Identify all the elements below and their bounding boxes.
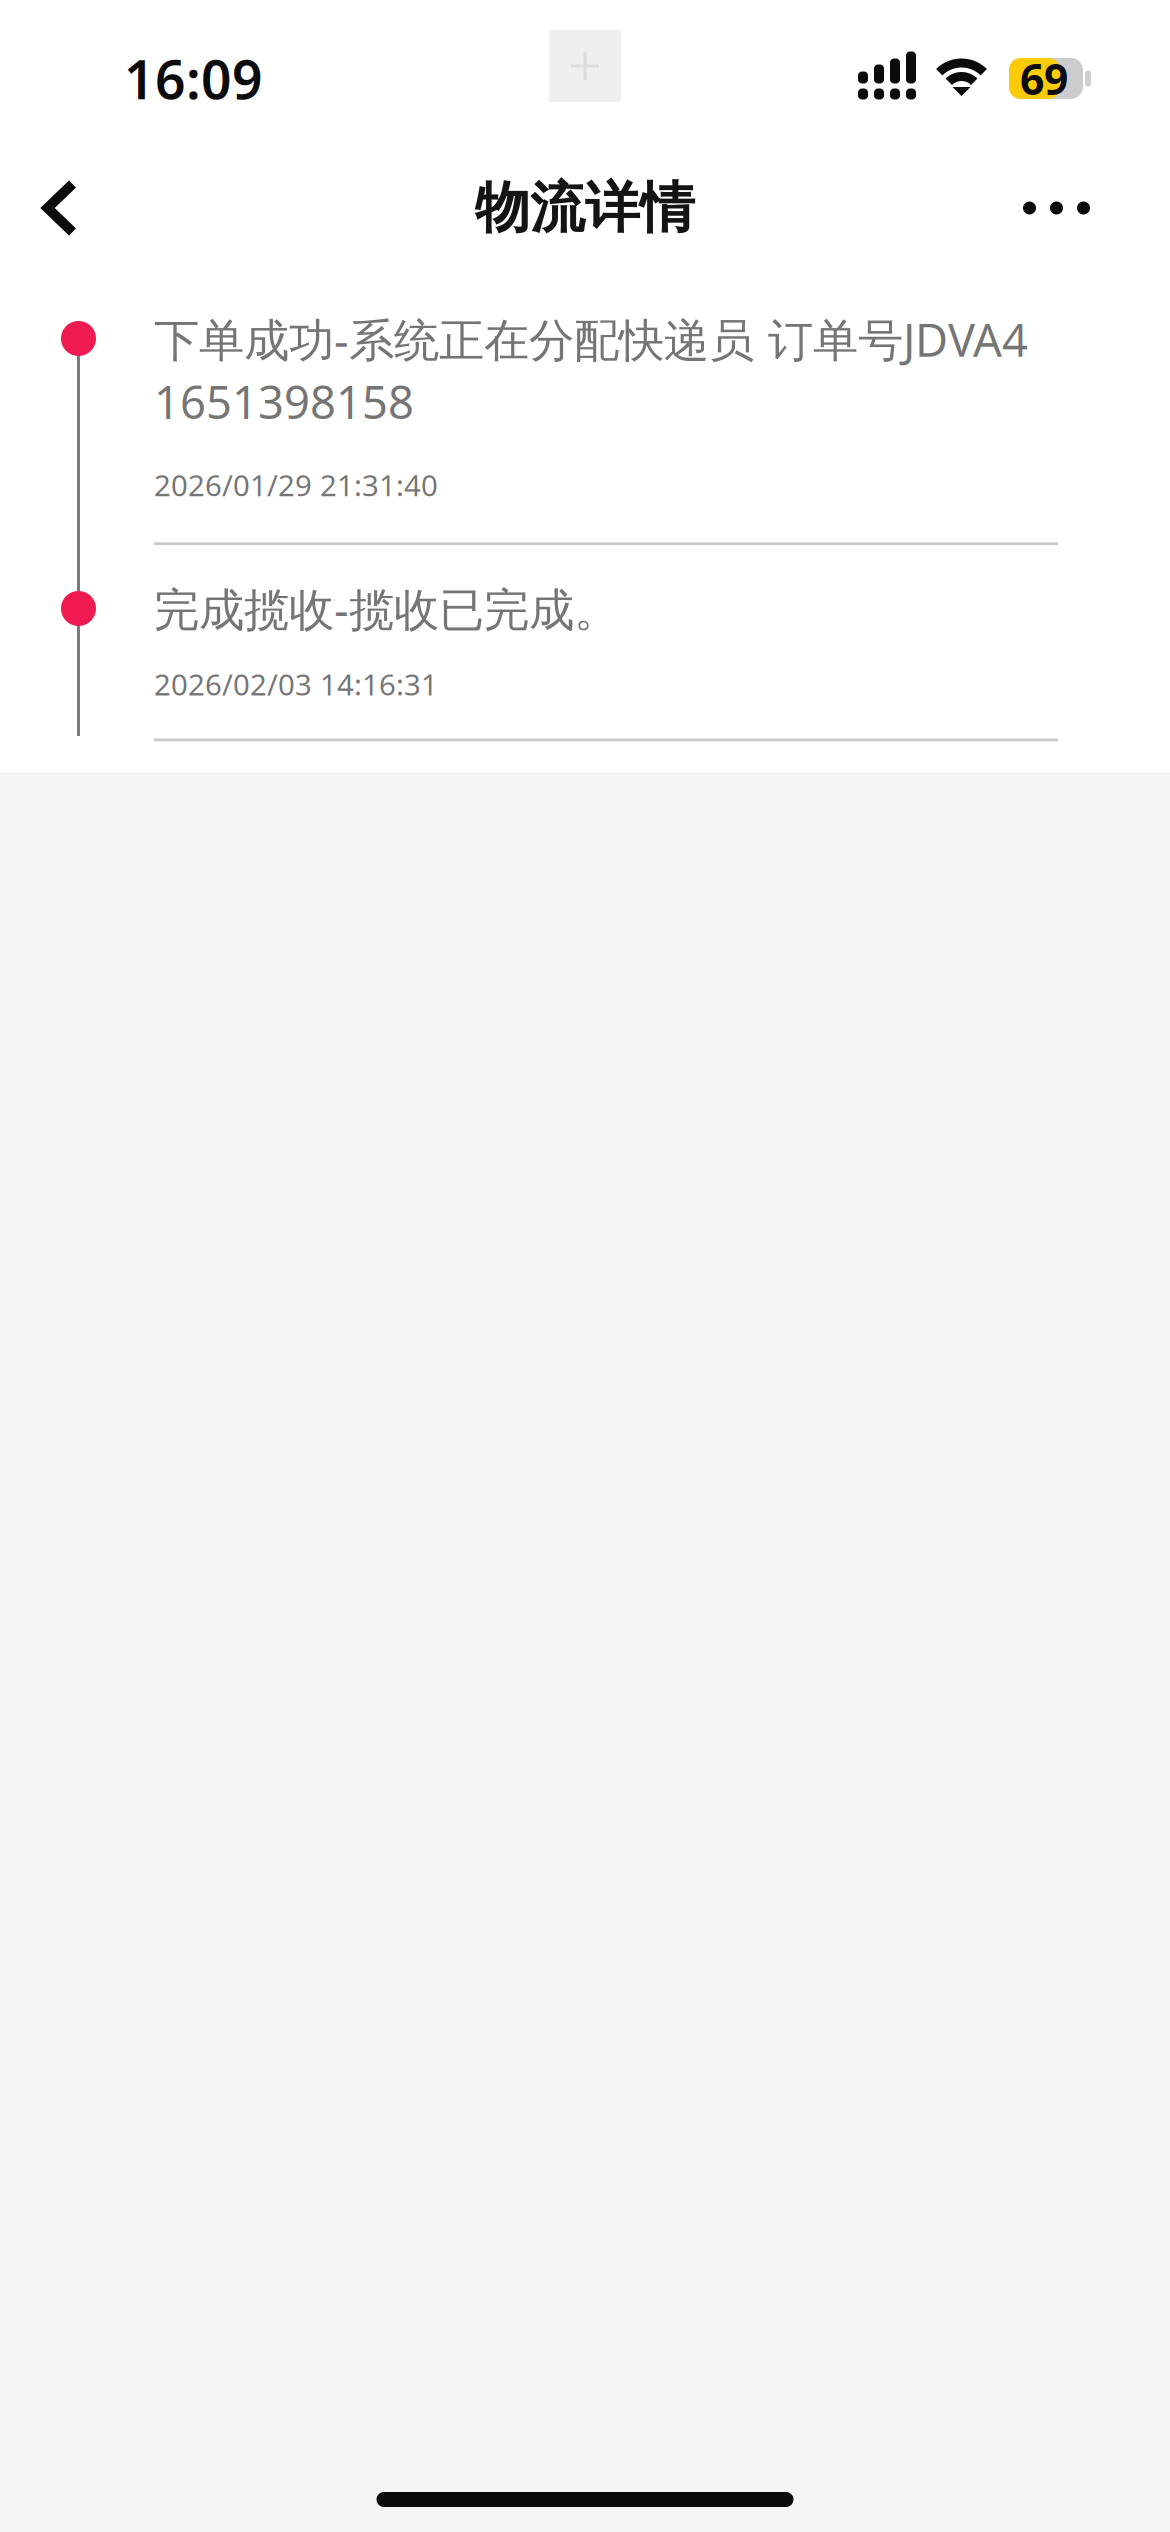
- staticText: 16:09: [124, 43, 263, 114]
- staticText: 物流详情: [475, 174, 695, 241]
- staticText: 69: [1020, 50, 1068, 107]
- button[interactable]: Back: [14, 156, 106, 260]
- staticText: 2026/01/29 21:31:40: [154, 465, 438, 504]
- staticText: 下单成功-系统正在分配快递员 订单号JDVA4: [154, 309, 1028, 369]
- staticText: 1651398158: [154, 371, 414, 431]
- staticText: 2026/02/03 14:16:31: [154, 665, 438, 704]
- staticText: 完成揽收-揽收已完成。: [154, 578, 619, 639]
- button[interactable]: More options: [994, 156, 1119, 260]
